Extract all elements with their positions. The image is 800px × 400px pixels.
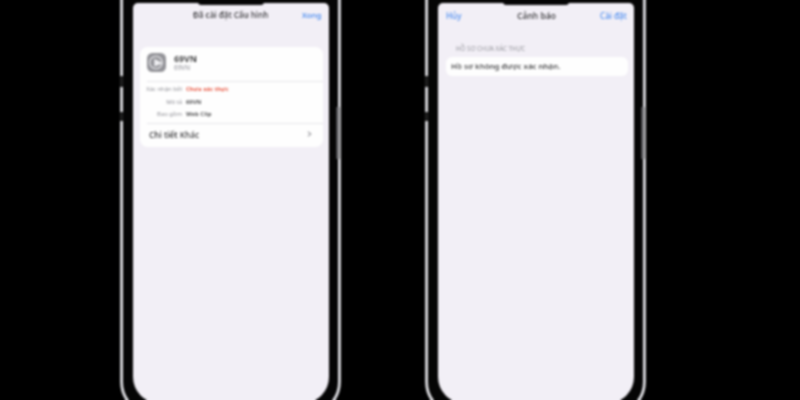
staticText: HỒ SƠ CHƯA XÁC THỰC (456, 44, 526, 52)
button[interactable]: Xong (296, 8, 329, 23)
staticText: Mô tả (166, 98, 182, 106)
staticText: Đã cài đặt Cấu hình (193, 9, 269, 20)
staticText: Xác nhận bởi (146, 85, 182, 93)
staticText: Hủy (446, 10, 462, 21)
staticText: Xong (302, 10, 322, 21)
staticText: Chưa xác thực (186, 85, 229, 93)
staticText: Cài đặt (600, 10, 627, 21)
button[interactable]: Hủy (438, 8, 468, 23)
staticText: Cảnh báo (517, 10, 556, 21)
button[interactable]: Chi tiết Khác (140, 123, 323, 145)
staticText: 69VN (174, 63, 191, 71)
staticText: Chi tiết Khác (149, 129, 200, 140)
staticText: 69VN (174, 53, 197, 63)
staticText: 69VN (186, 98, 202, 106)
staticText: Bao gồm (157, 110, 182, 118)
staticText: Hồ sơ không được xác nhận. (451, 61, 561, 72)
staticText: Web Clip (186, 110, 212, 118)
button[interactable]: Cài đặt (594, 8, 634, 23)
